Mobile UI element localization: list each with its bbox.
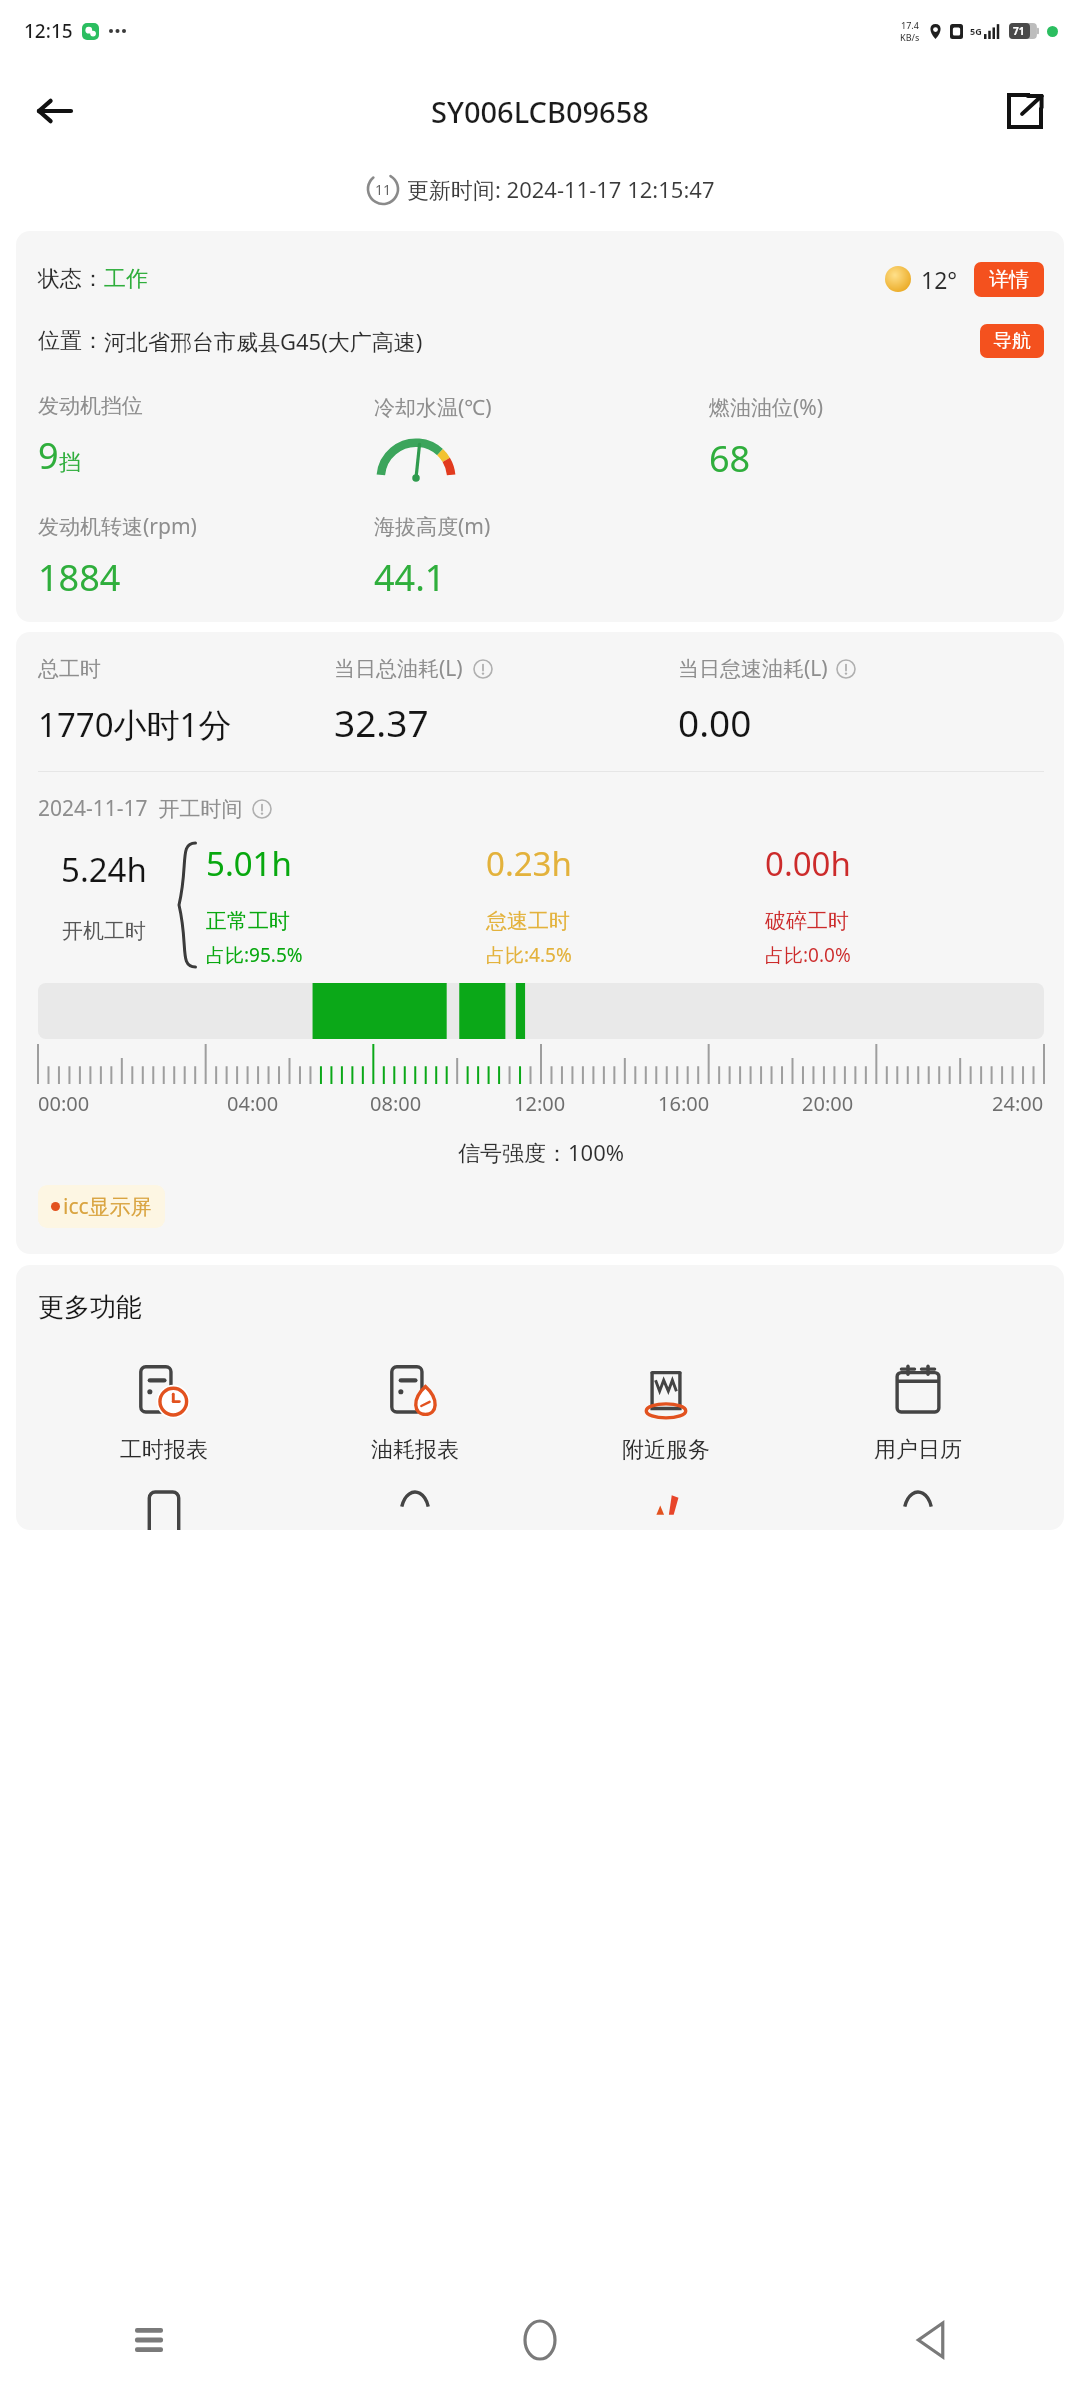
staticText: 河北省邢台市威县G45(大广高速) <box>104 326 423 356</box>
button[interactable]: Recent apps <box>110 2301 188 2379</box>
staticText: 04:00 <box>227 1090 279 1117</box>
staticText: 0.23h <box>486 841 572 886</box>
button[interactable]: 详情 <box>974 262 1044 297</box>
staticText: 00:00 <box>38 1090 90 1117</box>
staticText: 挡 <box>59 449 81 477</box>
staticText: 占比:4.5% <box>486 942 572 968</box>
staticText: 导航 <box>993 329 1031 353</box>
staticText: 9 <box>38 431 59 480</box>
staticText: 当日怠速油耗(L) <box>678 654 828 683</box>
staticText: 怠速工时 <box>486 908 570 934</box>
staticText: 12° <box>921 264 958 295</box>
staticText: 海拔高度(m) <box>374 512 491 541</box>
staticText: 71 <box>1013 24 1025 38</box>
staticText: 2024-11-17 开工时间 <box>38 794 243 823</box>
staticText: 44.1 <box>374 553 446 602</box>
staticText: 用户日历 <box>874 1436 962 1464</box>
staticText: KB/s <box>900 31 920 43</box>
staticText: 破碎工时 <box>765 908 849 934</box>
staticText: 信号强度：100% <box>458 1137 625 1167</box>
staticText: 5G <box>970 25 982 37</box>
staticText: 发动机转速(rpm) <box>38 512 197 541</box>
button[interactable]: icc显示屏 <box>38 1185 165 1228</box>
staticText: icc显示屏 <box>63 1192 152 1221</box>
button[interactable]: 工时报表 <box>38 1358 289 1464</box>
staticText: 12:00 <box>514 1090 566 1117</box>
button[interactable]: 油耗报表 <box>289 1358 540 1464</box>
staticText: 发动机挡位 <box>38 393 143 419</box>
staticText: 正常工时 <box>206 908 290 934</box>
staticText: 油耗报表 <box>371 1436 459 1464</box>
staticText: 更多功能 <box>38 1291 142 1324</box>
staticText: 1884 <box>38 553 121 602</box>
staticText: 位置： <box>38 327 104 355</box>
staticText: 占比:95.5% <box>206 942 303 968</box>
staticText: 68 <box>709 434 751 483</box>
button[interactable]: 导航 <box>980 324 1044 358</box>
staticText: 11 <box>375 180 392 199</box>
staticText: 燃油油位(%) <box>709 393 824 422</box>
staticText: 更新时间: 2024-11-17 12:15:47 <box>407 174 715 204</box>
staticText: 工作 <box>104 265 148 293</box>
staticText: 附近服务 <box>622 1436 710 1464</box>
staticText: 0.00h <box>765 841 851 886</box>
staticText: 24:00 <box>992 1090 1044 1117</box>
staticText: 5.01h <box>206 841 292 886</box>
staticText: 工时报表 <box>120 1436 208 1464</box>
staticText: 08:00 <box>370 1090 422 1117</box>
button[interactable]: Share <box>994 80 1056 142</box>
staticText: 20:00 <box>802 1090 854 1117</box>
staticText: 状态： <box>38 265 104 293</box>
staticText: 冷却水温(℃) <box>374 393 492 422</box>
staticText: 总工时 <box>38 656 101 682</box>
button[interactable]: 附近服务 <box>540 1358 792 1464</box>
button[interactable]: 用户日历 <box>792 1358 1044 1464</box>
staticText: 17.4 <box>901 19 919 31</box>
staticText: 占比:0.0% <box>765 942 851 968</box>
staticText: 16:00 <box>658 1090 710 1117</box>
staticText: 开机工时 <box>62 918 146 944</box>
button[interactable]: Back <box>22 79 86 143</box>
staticText: 5.24h <box>61 847 147 892</box>
staticText: 12:15 <box>24 18 73 44</box>
staticText: SY006LCB09658 <box>431 92 649 131</box>
staticText: 详情 <box>989 267 1029 292</box>
staticText: 当日总油耗(L) <box>334 654 463 683</box>
button[interactable]: Back <box>892 2301 970 2379</box>
staticText: 0.00 <box>678 697 752 747</box>
staticText: 1770小时1分 <box>38 702 232 747</box>
staticText: 32.37 <box>334 697 429 747</box>
button[interactable]: Home <box>501 2301 579 2379</box>
